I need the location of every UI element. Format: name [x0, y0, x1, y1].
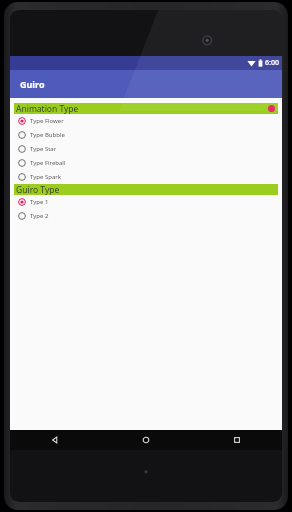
- staticText: Animation Type: [16, 103, 79, 114]
- button[interactable]: Recent apps: [191, 430, 282, 450]
- button[interactable]: Back: [10, 430, 100, 450]
- staticText: Type Bubble: [30, 131, 65, 139]
- button[interactable]: Type Spark: [14, 170, 278, 184]
- staticText: Type Flower: [30, 117, 64, 125]
- staticText: Type 2: [30, 212, 49, 220]
- button[interactable]: Type 2: [14, 209, 278, 223]
- staticText: Guiro Type: [16, 184, 60, 195]
- button[interactable]: Type Flower: [14, 114, 278, 128]
- button[interactable]: Animation Type: [14, 103, 278, 114]
- button[interactable]: Type 1: [14, 195, 278, 209]
- staticText: Type 1: [30, 198, 49, 206]
- button[interactable]: Type Fireball: [14, 156, 278, 170]
- staticText: Type Fireball: [30, 159, 66, 167]
- button[interactable]: Type Bubble: [14, 128, 278, 142]
- staticText: Type Star: [30, 145, 57, 153]
- staticText: Guiro: [20, 78, 45, 90]
- button[interactable]: Type Star: [14, 142, 278, 156]
- staticText: 6:00: [265, 58, 279, 68]
- button[interactable]: Guiro Type: [14, 184, 278, 195]
- staticText: Type Spark: [30, 173, 61, 181]
- button[interactable]: Home: [100, 430, 191, 450]
